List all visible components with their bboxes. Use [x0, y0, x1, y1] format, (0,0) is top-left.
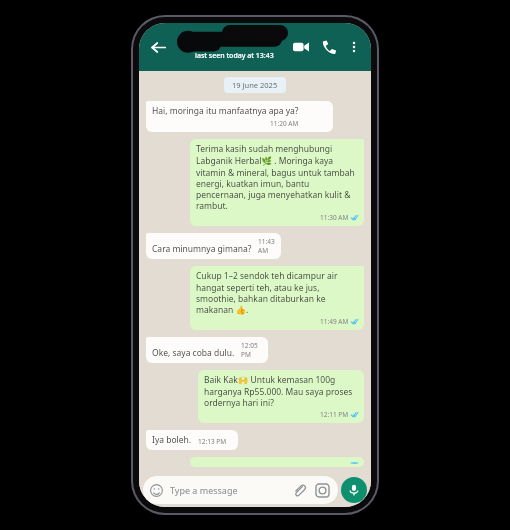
button[interactable]: 19 June 2025 — [232, 80, 278, 90]
button[interactable]: More options — [343, 36, 365, 58]
button[interactable]: Voice message — [341, 477, 367, 503]
button[interactable]: Attach — [290, 481, 308, 499]
button[interactable]: Iya boleh. — [146, 430, 238, 450]
staticText: 11:49 AM — [320, 317, 349, 326]
staticText: 11:20 AM — [270, 119, 299, 128]
button[interactable]: Emoji — [143, 476, 338, 504]
staticText: 11:43 AM — [258, 237, 275, 255]
button[interactable]: Call — [316, 34, 342, 60]
staticText: 19 June 2025 — [232, 80, 278, 90]
button[interactable]: Cukup 1–2 sendok teh dicampur air hangat… — [190, 266, 364, 330]
staticText: Type a message — [170, 484, 238, 496]
staticText: Oke, saya coba dulu. — [152, 347, 235, 359]
button[interactable]: Emoji — [148, 482, 164, 498]
staticText: 12:13 PM — [198, 437, 227, 446]
staticText: Iya boleh. — [152, 434, 192, 446]
staticText: last seen today at 13:43 — [195, 51, 274, 61]
button[interactable]: Hai, moringa itu manfaatnya apa ya? — [146, 101, 333, 132]
staticText: 12:05 PM — [241, 341, 262, 359]
staticText: Cara minumnya gimana? — [152, 243, 252, 255]
button[interactable]: Baik Kak🙌 Untuk kemasan 100g harganya Rp… — [198, 370, 364, 423]
button[interactable]: Video call — [288, 34, 314, 60]
staticText: 12:11 PM — [320, 410, 349, 419]
staticText: Hai, moringa itu manfaatnya apa ya? — [152, 105, 299, 117]
staticText: Cukup 1–2 sendok teh dicampur air hangat… — [196, 270, 358, 316]
button[interactable]: Terima kasih sudah menghubungi Labganik … — [190, 139, 364, 226]
staticText: Siap Kak. Boleh minta nama lengkap, ala … — [196, 461, 358, 463]
staticText: 11:30 AM — [320, 213, 349, 222]
button[interactable]: Siap Kak. Boleh minta nama lengkap, ala … — [190, 457, 364, 467]
staticText: Baik Kak🙌 Untuk kemasan 100g harganya Rp… — [204, 374, 358, 409]
button[interactable]: Oke, saya coba dulu. — [146, 337, 268, 363]
staticText: Terima kasih sudah menghubungi Labganik … — [196, 143, 358, 212]
button[interactable]: Cara minumnya gimana? — [146, 233, 281, 259]
button[interactable]: Back — [145, 34, 171, 60]
button[interactable]: Camera — [313, 481, 331, 499]
button[interactable]: last seen today at 13:43 — [173, 23, 288, 71]
